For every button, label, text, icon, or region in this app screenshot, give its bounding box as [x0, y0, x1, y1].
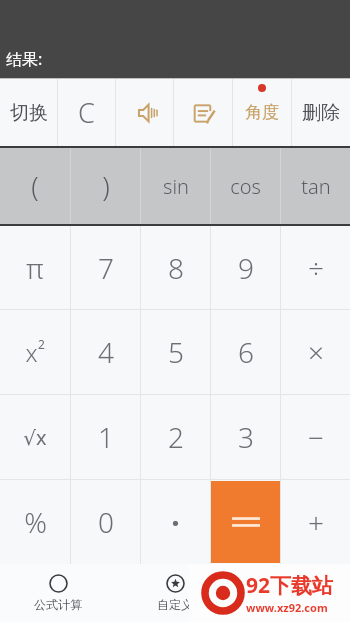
button[interactable]	[211, 481, 280, 563]
staticText: 切换	[10, 101, 48, 125]
staticText: 9	[238, 249, 254, 287]
staticText: 结果:	[6, 48, 43, 70]
button[interactable]: Sound	[116, 79, 173, 146]
button[interactable]: −	[281, 395, 350, 479]
button[interactable]: %	[0, 480, 70, 564]
button[interactable]: tan	[281, 148, 350, 224]
staticText: 8	[168, 249, 184, 287]
button[interactable]: ×	[281, 310, 350, 394]
staticText: ·	[171, 502, 180, 543]
staticText: 5	[168, 333, 184, 371]
button[interactable]: (	[0, 148, 70, 224]
button[interactable]: 角度	[233, 79, 291, 146]
staticText: tan	[301, 173, 331, 200]
staticText: 自定义	[157, 597, 193, 612]
staticText: cos	[230, 173, 261, 200]
staticText: π	[26, 249, 44, 287]
staticText: (	[31, 168, 39, 205]
button[interactable]: √x	[0, 395, 70, 479]
button[interactable]: 1	[71, 395, 140, 479]
staticText: +	[308, 503, 324, 541]
button[interactable]: 6	[211, 310, 280, 394]
button[interactable]: 自定义	[116, 564, 233, 622]
button[interactable]: ÷	[281, 226, 350, 309]
button[interactable]: )	[71, 148, 140, 224]
button[interactable]: 4	[71, 310, 140, 394]
staticText: ÷	[308, 249, 324, 287]
button[interactable]: C	[58, 79, 115, 146]
button[interactable]: cos	[211, 148, 280, 224]
staticText: 7	[98, 249, 114, 287]
button[interactable]: 2	[141, 395, 210, 479]
staticText: sin	[163, 173, 189, 200]
button[interactable]: 公式计算	[0, 564, 116, 622]
staticText: 公式计算	[34, 597, 82, 612]
staticText: 92下载站	[246, 571, 334, 600]
button[interactable]: 切换	[0, 79, 57, 146]
button[interactable]: 删除	[292, 79, 350, 146]
button[interactable]: 9	[211, 226, 280, 309]
staticText: ×	[308, 333, 324, 371]
staticText: 4	[98, 333, 114, 371]
staticText: 1	[98, 418, 114, 456]
staticText: x	[25, 336, 38, 369]
button[interactable]: 0	[71, 480, 140, 564]
button[interactable]: +	[281, 480, 350, 564]
staticText: 3	[238, 418, 254, 456]
staticText: %	[24, 503, 47, 541]
button[interactable]: 3	[211, 395, 280, 479]
button[interactable]: 8	[141, 226, 210, 309]
staticText: 0	[98, 503, 114, 541]
staticText: 角度	[245, 102, 279, 123]
button[interactable]: ·	[141, 480, 210, 564]
staticText: √x	[23, 424, 47, 451]
button[interactable]: 7	[71, 226, 140, 309]
staticText: 2	[168, 418, 184, 456]
staticText: )	[102, 168, 110, 205]
button[interactable]: Notes	[174, 79, 232, 146]
button[interactable]: x	[0, 310, 70, 394]
staticText: 6	[238, 333, 254, 371]
staticText: 删除	[302, 101, 340, 125]
staticText: 2	[38, 336, 45, 352]
button[interactable]: π	[0, 226, 70, 309]
staticText: −	[308, 418, 324, 456]
staticText: C	[78, 94, 95, 131]
button[interactable]: 5	[141, 310, 210, 394]
staticText: www.xz92.com	[246, 600, 328, 615]
button[interactable]: sin	[141, 148, 210, 224]
